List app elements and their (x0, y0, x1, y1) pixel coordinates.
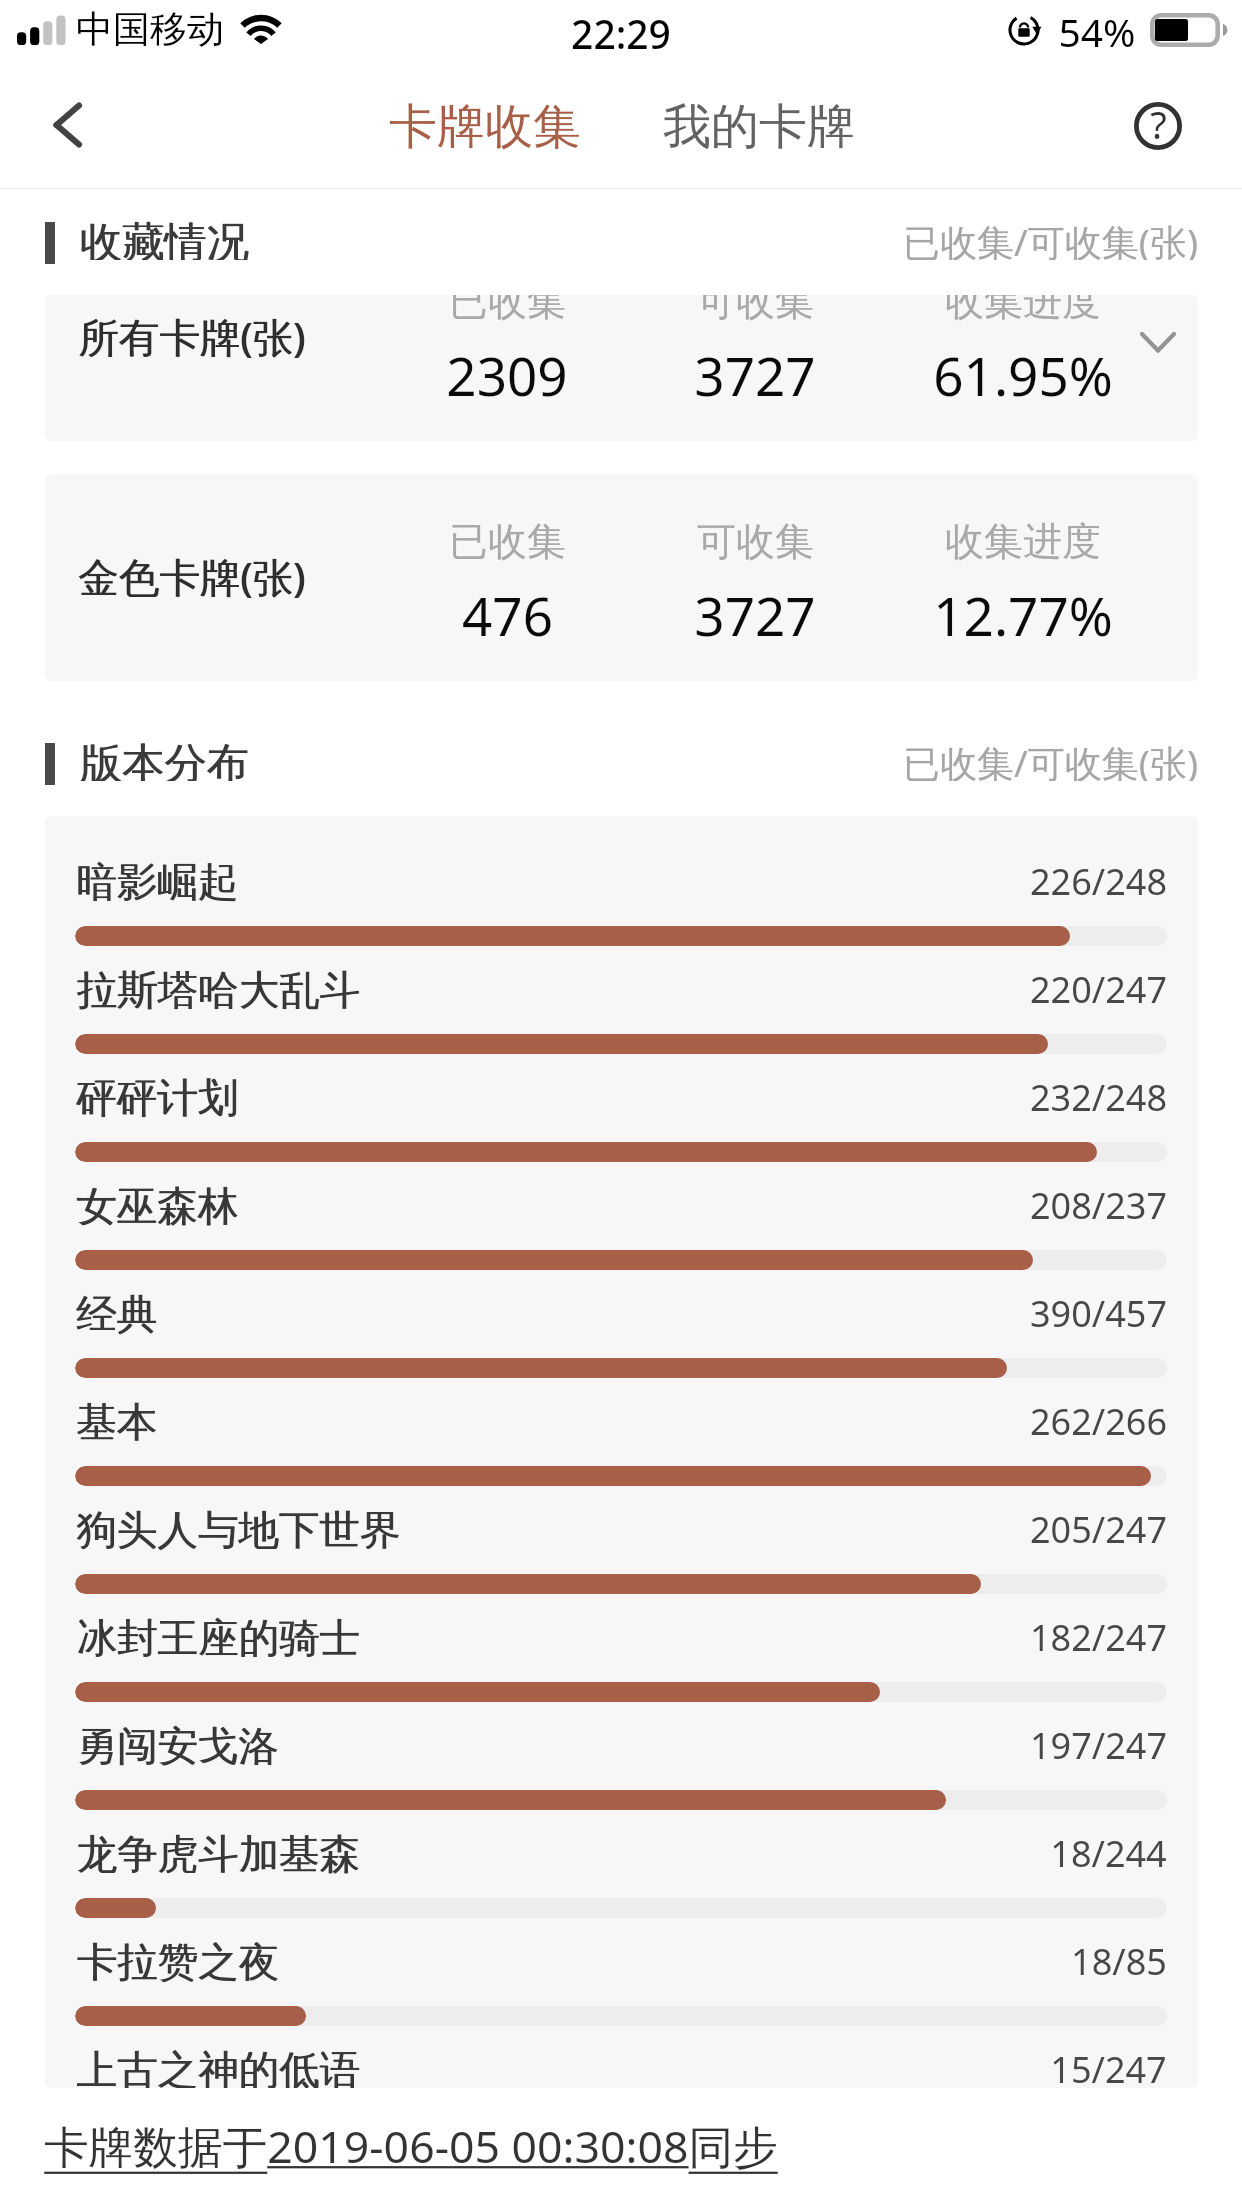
staticText: 12.77% (933, 579, 1113, 651)
staticText: 所有卡牌(张) (79, 309, 306, 364)
button[interactable]: 经典 (45, 1248, 1198, 1356)
staticText: 卡拉赞之夜 (77, 1937, 280, 1988)
staticText: 经典 (76, 1289, 157, 1340)
staticText: 收藏情况 (80, 216, 250, 260)
staticText: 女巫森林 (77, 1181, 239, 1232)
staticText: 已收集 (449, 295, 566, 326)
staticText: 龙争虎斗加基森 (76, 1829, 360, 1880)
staticText: 卡拉赞之夜 (76, 1937, 279, 1988)
staticText: 我的卡牌 (663, 97, 855, 157)
staticText: 基本 (77, 1397, 158, 1448)
button[interactable]: 所有卡牌(张) (45, 295, 1198, 441)
button[interactable]: 女巫森林 (45, 1140, 1198, 1248)
staticText: 暗影崛起 (77, 857, 239, 908)
staticText: 收藏情况 (79, 216, 249, 260)
staticText: 龙争虎斗加基森 (77, 1829, 361, 1880)
button[interactable]: 勇闯安戈洛 (45, 1680, 1198, 1788)
staticText: 勇闯安戈洛 (77, 1721, 280, 1772)
button[interactable]: 砰砰计划 (45, 1032, 1198, 1140)
staticText: 226/248 (1030, 857, 1167, 906)
staticText: 54% (1058, 5, 1136, 58)
staticText: 可收集 (697, 295, 814, 326)
staticText: 3727 (694, 339, 816, 411)
button[interactable]: 卡牌数据于2019-06-05 00:30:08同步 (44, 2115, 778, 2176)
button[interactable]: 狗头人与地下世界 (45, 1464, 1198, 1572)
button[interactable]: Help (1112, 80, 1204, 172)
staticText: 所有卡牌(张) (78, 309, 305, 364)
staticText: 狗头人与地下世界 (77, 1505, 401, 1556)
staticText: 15/247 (1050, 2045, 1167, 2088)
button[interactable]: Back (22, 80, 112, 170)
staticText: 18/244 (1050, 1829, 1167, 1878)
staticText: 冰封王座的骑士 (76, 1613, 360, 1664)
staticText: 卡牌收集 (389, 97, 581, 157)
staticText: 已收集 (449, 517, 566, 566)
staticText: 205/247 (1030, 1505, 1167, 1554)
staticText: 182/247 (1030, 1613, 1167, 1662)
staticText: 2309 (446, 339, 568, 411)
staticText: 暗影崛起 (76, 857, 238, 908)
button[interactable]: 我的卡牌 (663, 97, 855, 157)
staticText: 22:29 (571, 7, 671, 60)
staticText: 版本分布 (79, 737, 249, 781)
staticText: 狗头人与地下世界 (76, 1505, 400, 1556)
button[interactable]: 基本 (45, 1356, 1198, 1464)
staticText: 232/248 (1030, 1073, 1167, 1122)
button[interactable]: 卡拉赞之夜 (45, 1896, 1198, 2004)
staticText: 女巫森林 (76, 1181, 238, 1232)
staticText: 上古之神的低语 (77, 2045, 361, 2088)
staticText: 基本 (76, 1397, 157, 1448)
button[interactable]: 拉斯塔哈大乱斗 (45, 924, 1198, 1032)
staticText: 收集进度 (945, 295, 1101, 326)
staticText: 版本分布 (80, 737, 250, 781)
staticText: 卡牌数据于2019-06-05 00:30:08同步 (44, 2115, 778, 2176)
staticText: 上古之神的低语 (76, 2045, 360, 2088)
staticText: 220/247 (1030, 965, 1167, 1014)
staticText: 中国移动 (76, 6, 224, 53)
staticText: 可收集 (697, 517, 814, 566)
staticText: 收集进度 (945, 517, 1101, 566)
staticText: 390/457 (1030, 1289, 1167, 1338)
staticText: 金色卡牌(张) (78, 549, 305, 604)
staticText: 61.95% (933, 339, 1113, 411)
staticText: 3727 (694, 579, 816, 651)
staticText: 勇闯安戈洛 (76, 1721, 279, 1772)
button[interactable]: 暗影崛起 (45, 816, 1198, 924)
staticText: 18/85 (1071, 1937, 1167, 1986)
staticText: 拉斯塔哈大乱斗 (76, 965, 360, 1016)
button[interactable]: 冰封王座的骑士 (45, 1572, 1198, 1680)
staticText: ? (1150, 98, 1167, 150)
button[interactable]: 金色卡牌(张) (45, 474, 1198, 681)
button[interactable]: 龙争虎斗加基森 (45, 1788, 1198, 1896)
staticText: 砰砰计划 (76, 1073, 238, 1124)
staticText: 冰封王座的骑士 (77, 1613, 361, 1664)
staticText: 已收集/可收集(张) (903, 737, 1198, 781)
staticText: 已收集/可收集(张) (903, 216, 1198, 260)
staticText: 197/247 (1030, 1721, 1167, 1770)
staticText: 476 (462, 579, 553, 651)
staticText: 262/266 (1030, 1397, 1167, 1446)
staticText: 金色卡牌(张) (79, 549, 306, 604)
staticText: 拉斯塔哈大乱斗 (77, 965, 361, 1016)
staticText: 经典 (77, 1289, 158, 1340)
button[interactable]: 卡牌收集 (389, 97, 581, 157)
staticText: 砰砰计划 (77, 1073, 239, 1124)
staticText: 208/237 (1030, 1181, 1167, 1230)
button[interactable]: 上古之神的低语 (45, 2004, 1198, 2088)
